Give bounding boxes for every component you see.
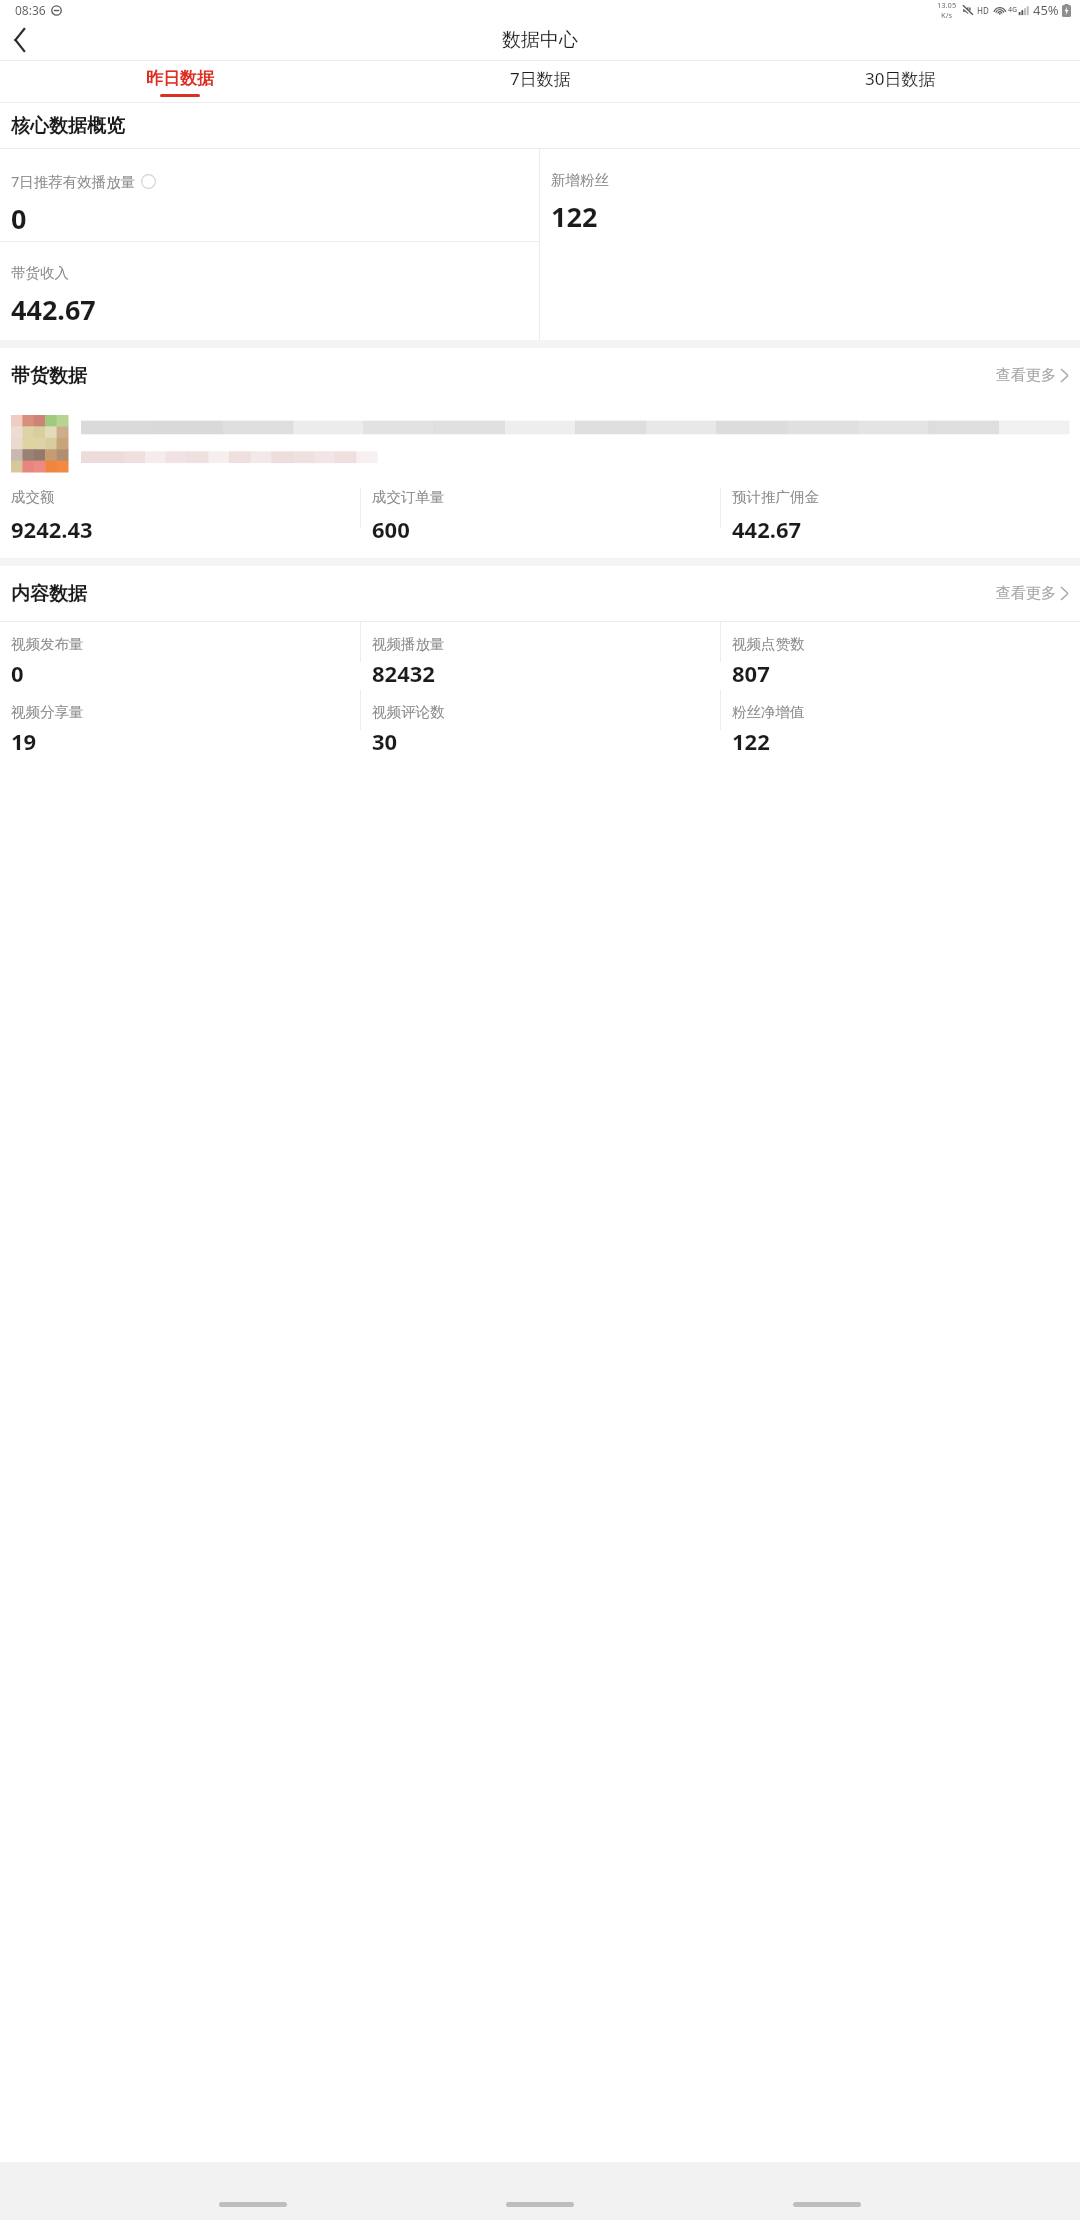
staticText: 核心数据概览 [11, 114, 125, 138]
staticText: 82432 [372, 658, 435, 688]
button[interactable]: 查看更多 [984, 360, 1080, 391]
staticText: 成交订单量 [372, 488, 445, 506]
staticText: 13.05 [937, 0, 957, 10]
staticText: 查看更多 [996, 584, 1056, 603]
staticText: 442.67 [732, 514, 802, 544]
staticText: 9242.43 [11, 514, 93, 544]
staticText: 视频评论数 [372, 703, 445, 721]
button[interactable]: 成交额 [0, 488, 360, 550]
staticText: 预计推广佣金 [732, 488, 819, 506]
staticText: 新增粉丝 [551, 171, 609, 189]
staticText: 0 [11, 200, 27, 237]
staticText: 122 [732, 726, 770, 756]
staticText: 0 [11, 658, 24, 688]
staticText: 带货收入 [11, 264, 69, 282]
button[interactable]: 视频分享量 [0, 690, 360, 758]
staticText: K/s [941, 10, 953, 20]
staticText: 4G [1008, 5, 1018, 15]
button[interactable]: 昨日数据 [0, 61, 360, 102]
staticText: 30 [372, 726, 398, 756]
button[interactable]: 新增粉丝 [540, 149, 1080, 241]
button[interactable]: Navigation [506, 2196, 574, 2212]
button[interactable]: 视频评论数 [361, 690, 720, 758]
staticText: 内容数据 [11, 582, 87, 606]
button[interactable]: 7日数据 [360, 61, 720, 102]
button[interactable]: Back [0, 20, 40, 60]
button[interactable]: Navigation [793, 2196, 861, 2212]
button[interactable]: 30日数据 [720, 61, 1080, 102]
staticText: 昨日数据 [146, 68, 214, 89]
button[interactable]: 7日推荐有效播放量 [0, 149, 539, 241]
staticText: 600 [372, 514, 410, 544]
staticText: 122 [551, 198, 598, 235]
staticText: 视频分享量 [11, 703, 84, 721]
staticText: 带货数据 [11, 364, 87, 388]
staticText: 粉丝净增值 [732, 703, 805, 721]
staticText: 成交额 [11, 488, 55, 506]
button[interactable]: 预计推广佣金 [721, 488, 1080, 550]
button[interactable]: 成交订单量 [361, 488, 720, 550]
button[interactable]: 查看更多 [984, 578, 1080, 609]
staticText: 19 [11, 726, 37, 756]
staticText: 7日数据 [510, 67, 571, 90]
staticText: 807 [732, 658, 770, 688]
staticText: 30日数据 [865, 67, 936, 90]
staticText: 08:36 [15, 2, 46, 18]
staticText: HD [977, 5, 989, 16]
button[interactable]: 粉丝净增值 [721, 690, 1080, 758]
staticText: 7日推荐有效播放量 [11, 171, 136, 191]
button[interactable]: 视频发布量 [0, 622, 360, 690]
staticText: 视频播放量 [372, 635, 445, 653]
staticText: 45% [1033, 1, 1059, 19]
button[interactable]: 带货收入 [0, 242, 539, 340]
button[interactable]: 视频点赞数 [721, 622, 1080, 690]
button[interactable]: Navigation [219, 2196, 287, 2212]
staticText: 数据中心 [502, 28, 578, 52]
button[interactable]: 视频播放量 [361, 622, 720, 690]
staticText: 查看更多 [996, 366, 1056, 385]
staticText: 视频发布量 [11, 635, 84, 653]
staticText: 442.67 [11, 291, 96, 328]
staticText: 视频点赞数 [732, 635, 805, 653]
